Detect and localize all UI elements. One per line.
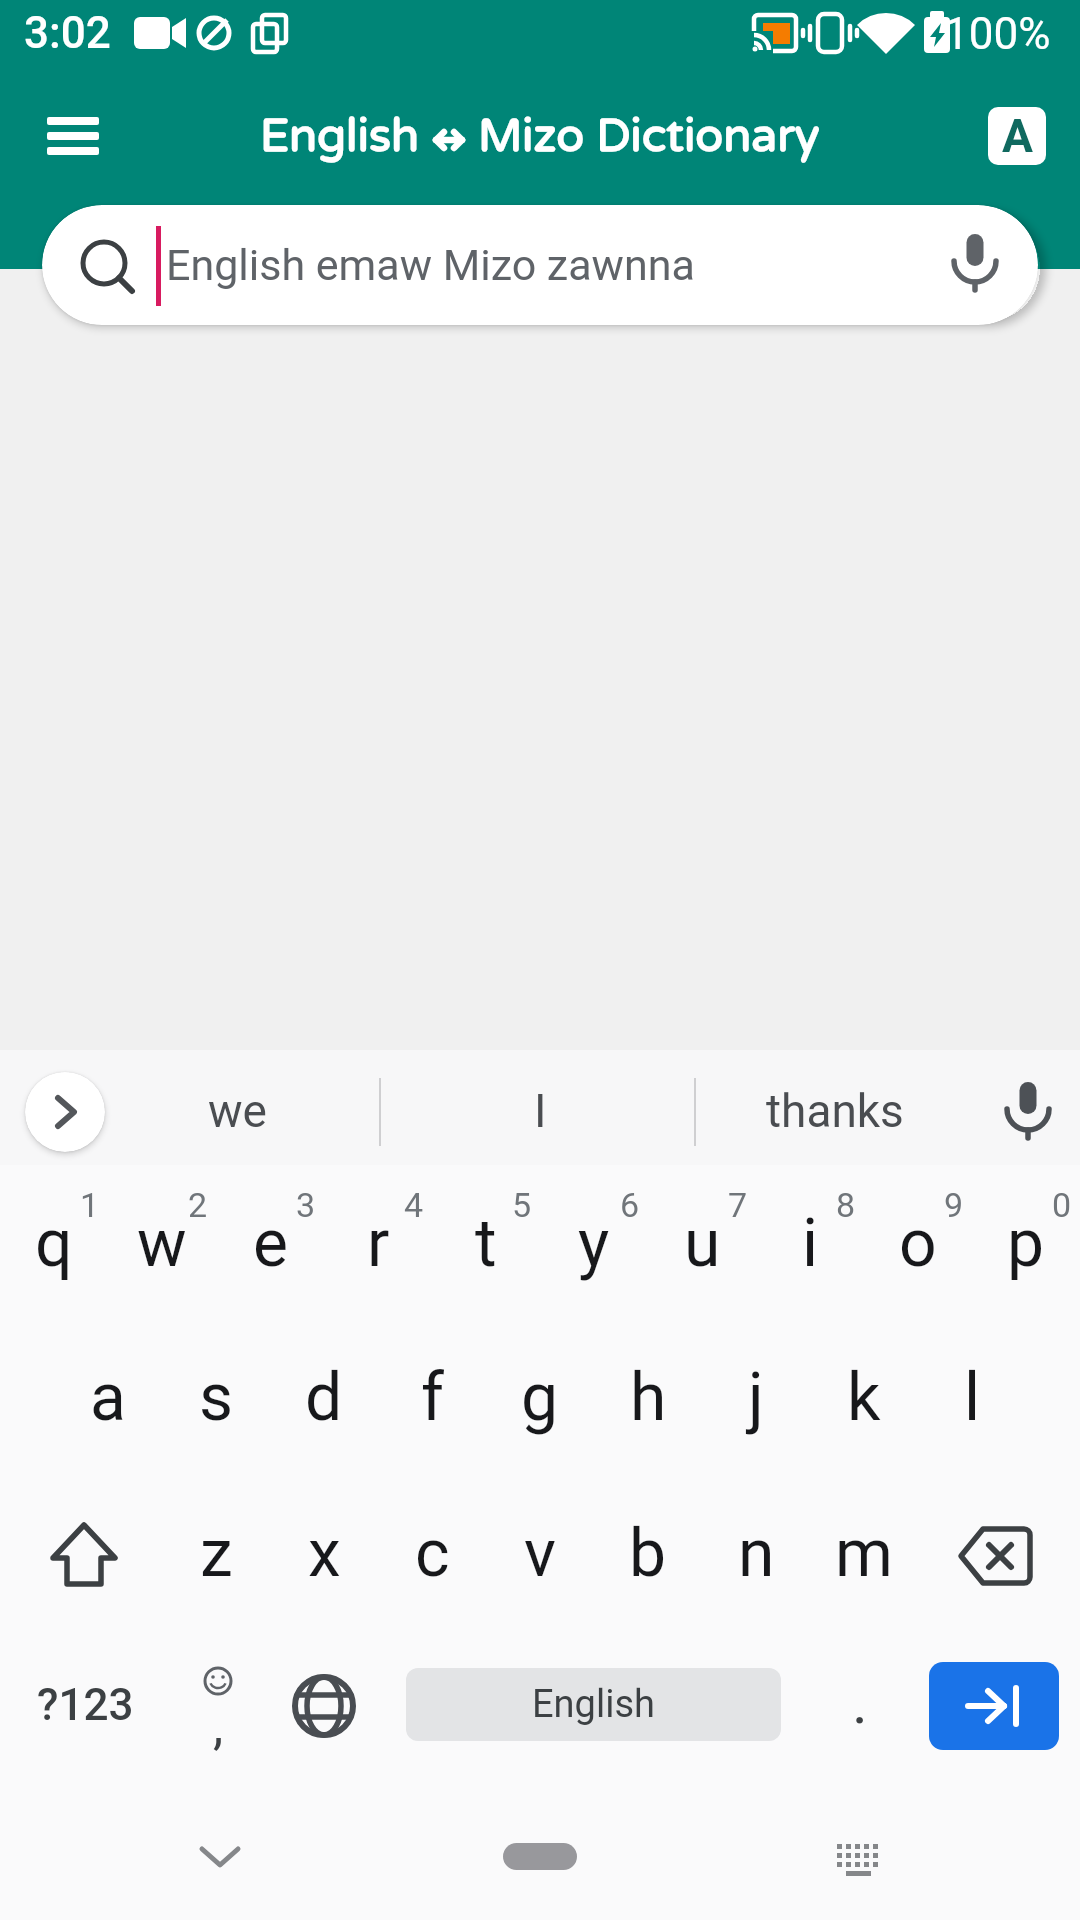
button[interactable]: i — [756, 1179, 864, 1307]
button[interactable] — [170, 1806, 270, 1906]
staticText: A — [1002, 109, 1033, 163]
staticText: 5 — [512, 1185, 532, 1225]
button[interactable]: English — [406, 1668, 781, 1741]
staticText: p — [1007, 1205, 1045, 1282]
button[interactable]: I — [410, 1054, 670, 1168]
staticText: z — [200, 1515, 233, 1592]
staticText: Mizo Dictionary — [478, 109, 820, 164]
button[interactable] — [503, 1843, 577, 1870]
button[interactable] — [929, 1662, 1059, 1750]
staticText: 3 — [296, 1185, 316, 1225]
staticText: i — [802, 1205, 819, 1282]
staticText: e — [253, 1205, 288, 1282]
button[interactable] — [25, 1072, 105, 1152]
button[interactable]: English emaw Mizo zawnna — [42, 205, 1038, 325]
staticText: ?123 — [37, 1679, 134, 1731]
staticText: h — [630, 1359, 667, 1436]
button[interactable]: k — [810, 1333, 918, 1461]
staticText: English — [532, 1682, 655, 1727]
button[interactable]: e — [216, 1179, 324, 1307]
button[interactable] — [24, 1496, 144, 1616]
staticText: y — [578, 1205, 610, 1282]
staticText: 1 — [80, 1185, 100, 1225]
staticText: c — [415, 1515, 450, 1592]
staticText: 2 — [188, 1185, 208, 1225]
staticText: t — [475, 1205, 497, 1282]
button[interactable]: w — [108, 1179, 216, 1307]
staticText: I — [534, 1084, 547, 1138]
staticText: we — [208, 1084, 267, 1138]
staticText: 3:02 — [24, 7, 111, 59]
staticText: English — [260, 109, 420, 164]
button[interactable]: c — [378, 1489, 486, 1617]
button[interactable] — [935, 1496, 1055, 1616]
button[interactable]: r — [324, 1179, 432, 1307]
staticText: o — [899, 1205, 937, 1282]
staticText: g — [521, 1359, 559, 1436]
staticText: j — [748, 1359, 764, 1436]
staticText: b — [629, 1515, 667, 1592]
staticText: 8 — [836, 1185, 856, 1225]
button[interactable]: j — [702, 1333, 810, 1461]
button[interactable]: y — [540, 1179, 648, 1307]
button[interactable]: q — [0, 1179, 108, 1307]
button[interactable]: b — [594, 1489, 702, 1617]
button[interactable]: s — [162, 1333, 270, 1461]
button[interactable]: l — [918, 1333, 1026, 1461]
staticText: 100% — [944, 8, 1051, 60]
button[interactable] — [269, 1651, 379, 1761]
button[interactable]: m — [810, 1489, 918, 1617]
button[interactable]: , — [163, 1646, 273, 1766]
staticText: a — [90, 1359, 126, 1436]
staticText: s — [199, 1359, 234, 1436]
staticText: k — [847, 1359, 881, 1436]
button[interactable]: a — [54, 1333, 162, 1461]
button[interactable]: we — [107, 1054, 367, 1168]
staticText: 4 — [404, 1185, 424, 1225]
staticText: 6 — [620, 1185, 640, 1225]
button[interactable]: p — [972, 1179, 1080, 1307]
button[interactable]: A — [988, 107, 1046, 165]
button[interactable] — [808, 1806, 908, 1906]
button[interactable]: u — [648, 1179, 756, 1307]
button[interactable] — [24, 100, 124, 176]
staticText: 9 — [944, 1185, 964, 1225]
staticText: . — [852, 1667, 868, 1737]
button[interactable]: d — [270, 1333, 378, 1461]
staticText: x — [308, 1515, 341, 1592]
button[interactable]: thanks — [705, 1054, 965, 1168]
button[interactable]: o — [864, 1179, 972, 1307]
staticText: English emaw Mizo zawnna — [166, 240, 695, 290]
staticText: v — [524, 1515, 556, 1592]
button[interactable]: g — [486, 1333, 594, 1461]
staticText: q — [35, 1205, 73, 1282]
staticText: n — [738, 1515, 775, 1592]
staticText: , — [213, 1696, 224, 1756]
staticText: l — [964, 1359, 981, 1436]
button[interactable] — [988, 1072, 1068, 1152]
button[interactable]: n — [702, 1489, 810, 1617]
staticText: u — [684, 1205, 721, 1282]
button[interactable]: f — [378, 1333, 486, 1461]
staticText: thanks — [766, 1084, 904, 1138]
staticText: 7 — [728, 1185, 748, 1225]
button[interactable]: t — [432, 1179, 540, 1307]
button[interactable]: v — [486, 1489, 594, 1617]
button[interactable]: . — [810, 1647, 910, 1757]
button[interactable]: z — [162, 1489, 270, 1617]
button[interactable]: ?123 — [10, 1645, 160, 1765]
staticText: d — [305, 1359, 343, 1436]
staticText: m — [835, 1515, 893, 1592]
button[interactable]: h — [594, 1333, 702, 1461]
staticText: r — [367, 1205, 390, 1282]
staticText: w — [137, 1205, 187, 1282]
button[interactable]: x — [270, 1489, 378, 1617]
staticText: 0 — [1052, 1185, 1072, 1225]
staticText: f — [421, 1359, 444, 1436]
